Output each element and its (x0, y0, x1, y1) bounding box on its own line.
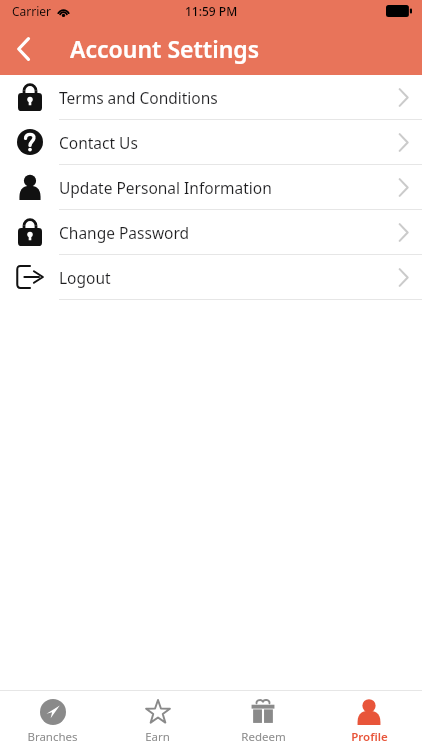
button[interactable]: Profile (316, 691, 422, 750)
button[interactable]: Redeem (210, 691, 316, 750)
button[interactable]: Contact Us (0, 120, 422, 164)
button[interactable]: Logout (0, 255, 422, 299)
staticText: Contact Us (59, 132, 138, 153)
button[interactable]: Terms and Conditions (0, 75, 422, 119)
staticText: Profile (351, 729, 388, 745)
staticText: Carrier (12, 3, 52, 19)
staticText: Update Personal Information (59, 177, 272, 198)
staticText: Earn (145, 729, 170, 745)
staticText: Logout (59, 267, 111, 288)
staticText: 11:59 PM (185, 3, 238, 19)
staticText: Branches (27, 729, 78, 745)
button[interactable]: Earn (105, 691, 210, 750)
button[interactable]: Branches (0, 691, 105, 750)
staticText: Redeem (241, 729, 286, 745)
button[interactable]: Back (0, 25, 48, 73)
staticText: Change Password (59, 222, 190, 243)
button[interactable]: Change Password (0, 210, 422, 254)
staticText: Terms and Conditions (59, 87, 218, 108)
button[interactable]: Update Personal Information (0, 165, 422, 209)
staticText: Account Settings (70, 33, 260, 64)
